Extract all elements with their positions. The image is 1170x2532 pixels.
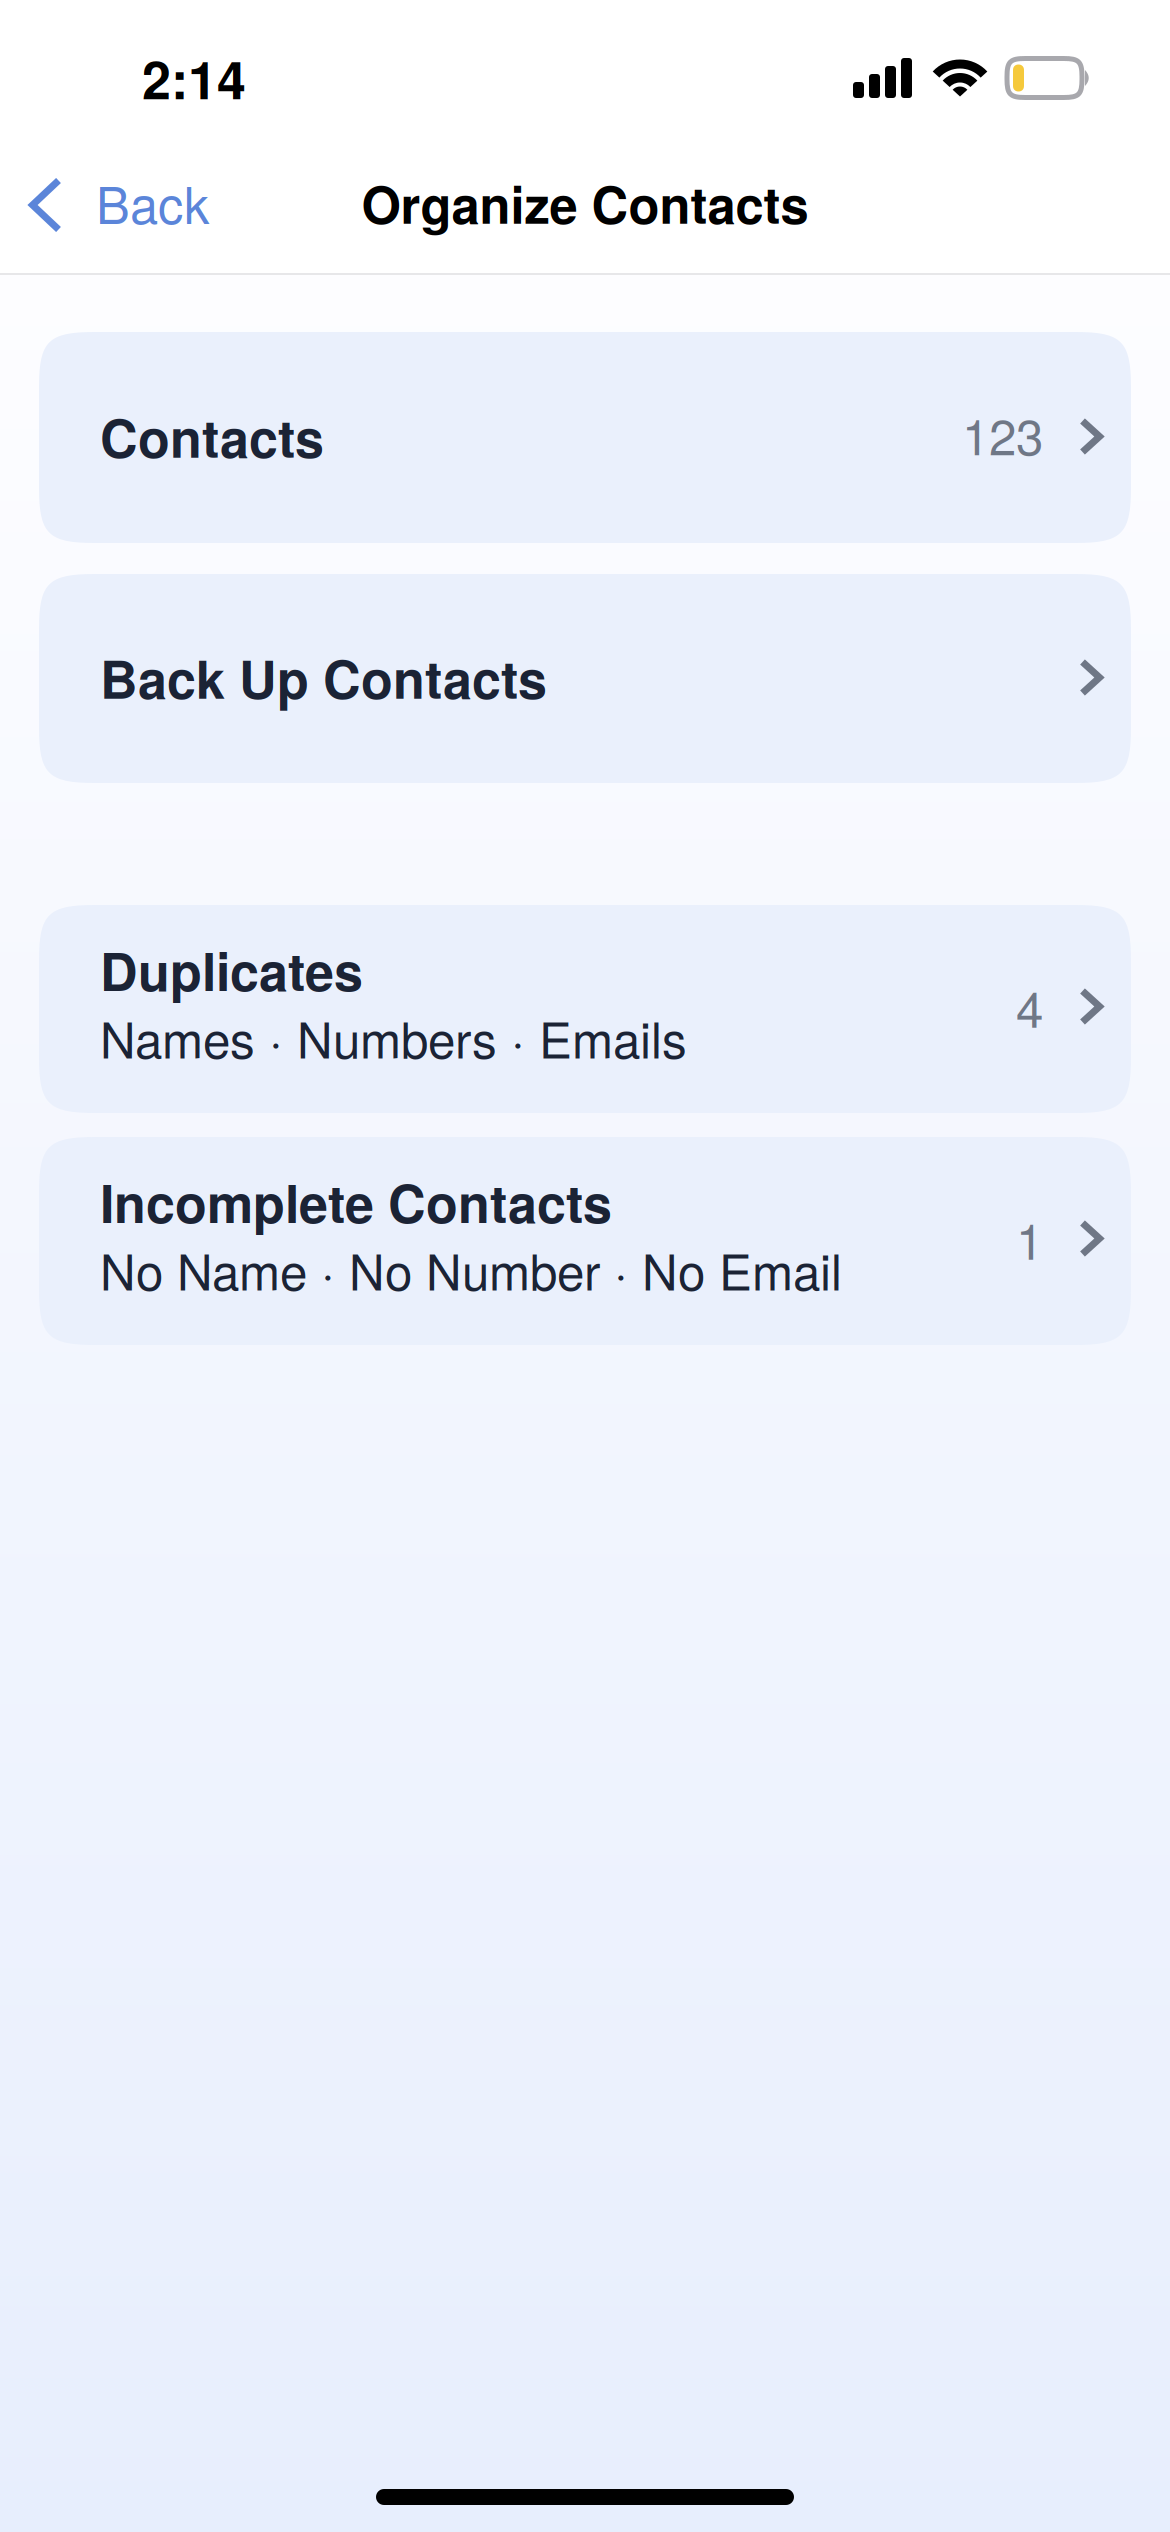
staticText: No Name · No Number · No Email	[100, 1234, 842, 1304]
button[interactable]: Back Up Contacts	[39, 574, 1131, 783]
staticText: 4	[1016, 971, 1043, 1042]
staticText: 123	[962, 399, 1043, 469]
staticText: 1	[1016, 1203, 1043, 1274]
staticText: 2:14	[142, 41, 246, 115]
button[interactable]: Contacts	[39, 332, 1131, 543]
staticText: Back Up Contacts	[100, 640, 547, 715]
staticText: Back	[96, 166, 209, 238]
staticText: Incomplete Contacts	[100, 1164, 612, 1239]
button[interactable]: Incomplete Contacts	[39, 1137, 1131, 1345]
button[interactable]: Duplicates	[39, 905, 1131, 1113]
staticText: Duplicates	[100, 932, 363, 1007]
button[interactable]: Back	[0, 155, 233, 259]
staticText: Organize Contacts	[361, 167, 808, 239]
staticText: Contacts	[100, 399, 324, 474]
staticText: Names · Numbers · Emails	[100, 1002, 687, 1072]
